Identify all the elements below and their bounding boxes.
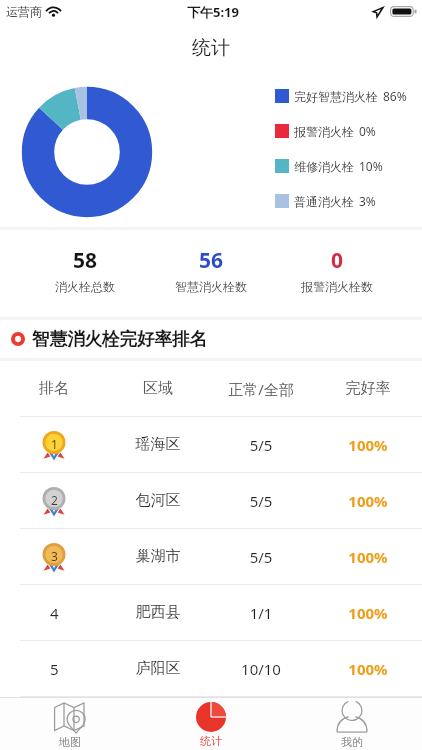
staticText: 0 bbox=[331, 246, 344, 275]
button[interactable]: 3 bbox=[0, 529, 422, 584]
staticText: 运营商 bbox=[6, 4, 42, 19]
staticText: 4 bbox=[50, 603, 59, 623]
staticText: 100% bbox=[314, 659, 422, 679]
staticText: 5 bbox=[50, 659, 59, 679]
staticText: 肥西县 bbox=[108, 603, 208, 622]
staticText: 我的 bbox=[341, 735, 363, 749]
staticText: 完好智慧消火栓 bbox=[294, 89, 378, 104]
staticText: 100% bbox=[314, 435, 422, 455]
staticText: 智慧消火栓完好率排名 bbox=[32, 328, 207, 350]
staticText: 0% bbox=[359, 123, 376, 139]
staticText: 地图 bbox=[59, 735, 81, 749]
staticText: 56 bbox=[199, 246, 224, 275]
staticText: 维修消火栓 bbox=[294, 159, 354, 174]
staticText: 100% bbox=[314, 603, 422, 623]
button[interactable]: 5 bbox=[0, 641, 422, 696]
button[interactable]: 4 bbox=[0, 585, 422, 640]
staticText: 瑶海区 bbox=[108, 435, 208, 454]
staticText: 智慧消火栓数 bbox=[175, 279, 247, 294]
staticText: 1 bbox=[51, 436, 58, 452]
staticText: 5/5 bbox=[208, 547, 314, 567]
staticText: 巢湖市 bbox=[108, 547, 208, 566]
staticText: 报警消火栓数 bbox=[301, 279, 373, 294]
staticText: 庐阳区 bbox=[108, 659, 208, 678]
button[interactable]: 2 bbox=[0, 473, 422, 528]
staticText: 5/5 bbox=[208, 491, 314, 511]
staticText: 1/1 bbox=[208, 603, 314, 623]
staticText: 统计 bbox=[192, 36, 230, 60]
staticText: 10% bbox=[359, 158, 383, 174]
button[interactable]: 统计 bbox=[140, 698, 281, 750]
button[interactable]: 地图 bbox=[0, 698, 140, 750]
button[interactable]: 我的 bbox=[281, 698, 422, 750]
staticText: 包河区 bbox=[108, 491, 208, 510]
staticText: 58 bbox=[73, 246, 98, 275]
staticText: 排名 bbox=[0, 379, 108, 398]
staticText: 3% bbox=[359, 193, 376, 209]
staticText: 完好率 bbox=[314, 379, 422, 398]
staticText: 下午5:19 bbox=[187, 3, 239, 21]
button[interactable]: 1 bbox=[0, 417, 422, 472]
staticText: 正常/全部 bbox=[208, 379, 314, 399]
staticText: 86% bbox=[383, 88, 407, 104]
staticText: 区域 bbox=[108, 379, 208, 398]
staticText: 100% bbox=[314, 491, 422, 511]
staticText: 普通消火栓 bbox=[294, 194, 354, 209]
staticText: 10/10 bbox=[208, 659, 314, 679]
staticText: 统计 bbox=[200, 734, 222, 748]
staticText: 5/5 bbox=[208, 435, 314, 455]
staticText: 2 bbox=[51, 492, 58, 508]
staticText: 100% bbox=[314, 547, 422, 567]
staticText: 消火栓总数 bbox=[55, 279, 115, 294]
staticText: 3 bbox=[51, 548, 58, 564]
staticText: 报警消火栓 bbox=[294, 124, 354, 139]
